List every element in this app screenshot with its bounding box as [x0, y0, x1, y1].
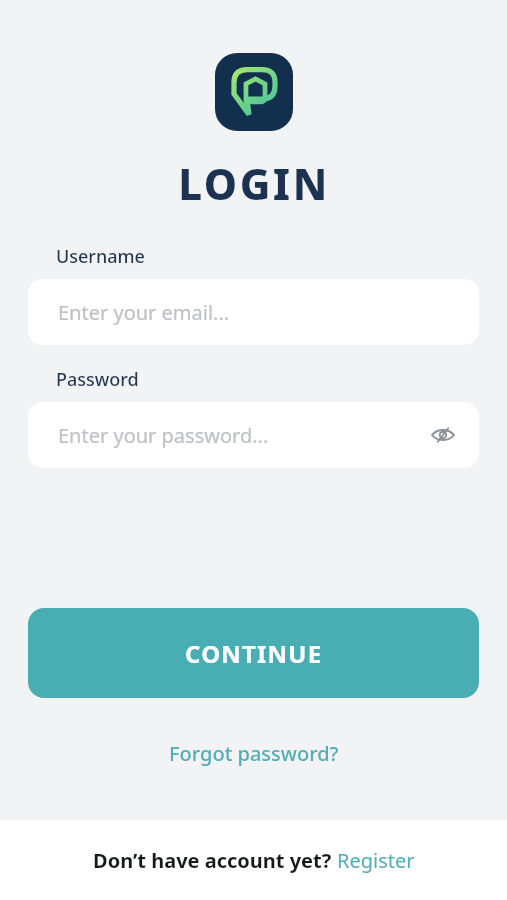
staticText: Register: [337, 847, 415, 874]
staticText: Don’t have account yet?: [93, 847, 337, 874]
button[interactable]: Enter your email...: [28, 279, 479, 345]
staticText: Enter your password...: [58, 422, 269, 449]
staticText: CONTINUE: [185, 637, 323, 670]
staticText: Username: [56, 244, 145, 269]
button[interactable]: Register: [337, 847, 415, 874]
button[interactable]: Forgot password?: [161, 736, 347, 771]
button[interactable]: Show password: [425, 417, 461, 453]
staticText: LOGIN: [178, 155, 330, 212]
staticText: Password: [56, 367, 139, 392]
staticText: Forgot password?: [169, 740, 339, 767]
button[interactable]: Enter your password...: [28, 402, 479, 468]
staticText: Enter your email...: [58, 299, 230, 326]
button[interactable]: CONTINUE: [28, 608, 479, 698]
